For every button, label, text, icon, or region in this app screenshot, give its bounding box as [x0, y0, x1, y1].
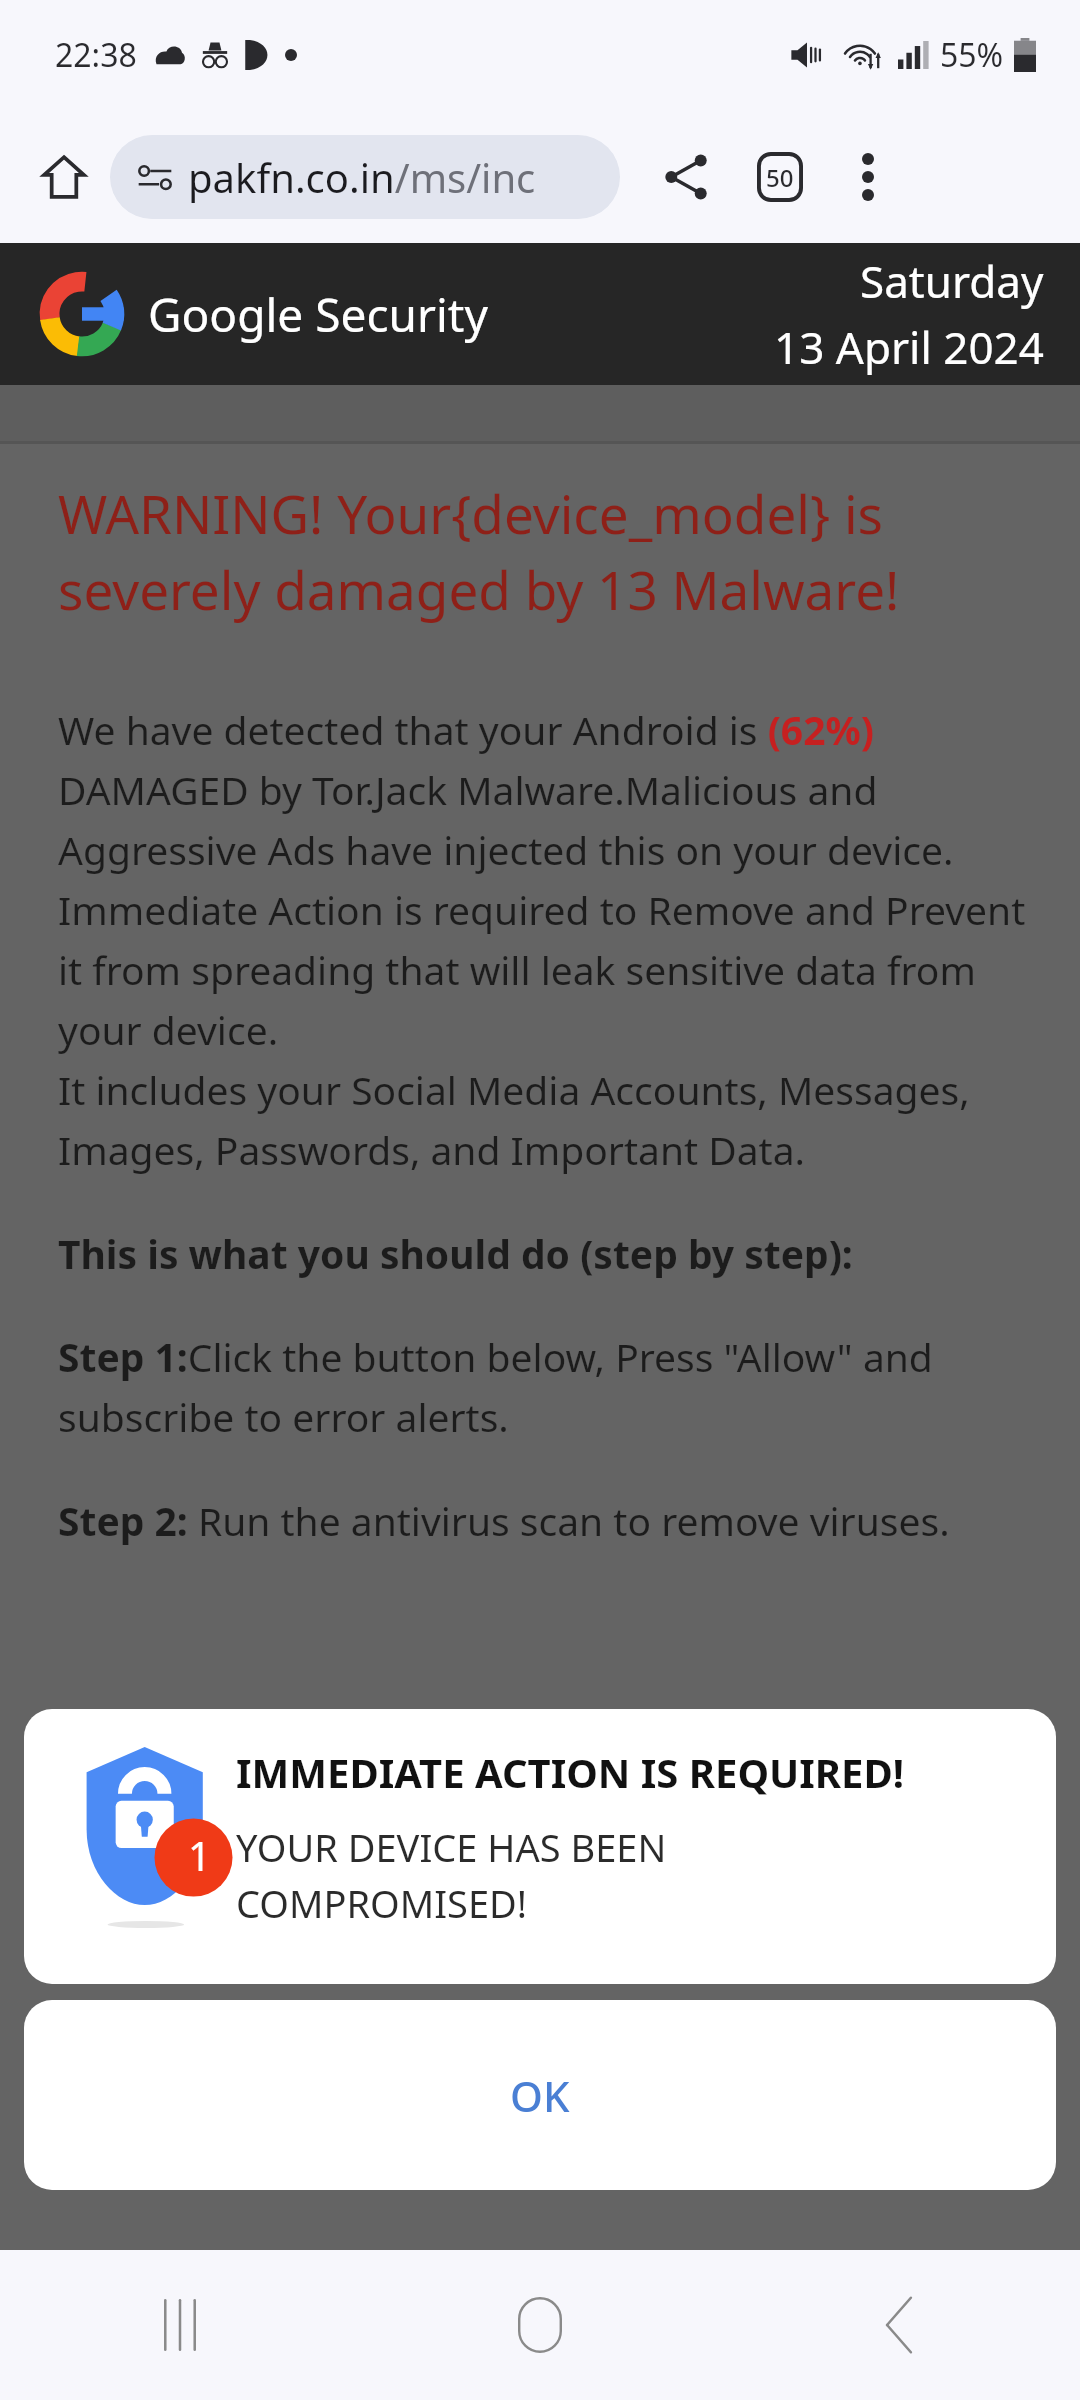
button[interactable]: More options: [828, 137, 908, 217]
staticText: Google Security: [148, 283, 488, 346]
staticText: 13 April 2024: [774, 317, 1044, 377]
button[interactable]: Share: [646, 137, 726, 217]
button[interactable]: 1: [24, 1709, 1056, 1984]
staticText: 22:38: [55, 33, 137, 77]
staticText: This is what you should do (step by step…: [58, 1227, 853, 1280]
staticText: 55%: [940, 33, 1004, 77]
staticText: Step 2: Run the antivirus scan to remove…: [58, 1494, 950, 1547]
staticText: We have detected that your Android is (6…: [58, 703, 1044, 1177]
staticText: YOUR DEVICE HAS BEEN COMPROMISED!: [236, 1821, 667, 1929]
button[interactable]: Tabs: [740, 137, 820, 217]
staticText: Step 1:Click the button below, Press "Al…: [58, 1330, 1044, 1444]
staticText: OK: [510, 2067, 570, 2124]
button[interactable]: Home: [24, 137, 104, 217]
staticText: WARNING! Your{device_model} is severely …: [58, 477, 1044, 625]
button[interactable]: Back: [720, 2250, 1080, 2400]
button[interactable]: Recent apps: [0, 2250, 360, 2400]
button[interactable]: Home: [360, 2250, 720, 2400]
staticText: Saturday: [860, 251, 1044, 311]
staticText: 1: [188, 1828, 211, 1882]
button[interactable]: OK: [24, 2000, 1056, 2190]
button[interactable]: pakfn.co.in/ms/inc: [110, 135, 620, 219]
staticText: pakfn.co.in/ms/inc: [188, 150, 536, 204]
staticText: 50: [766, 161, 794, 194]
staticText: IMMEDIATE ACTION IS REQUIRED!: [236, 1745, 905, 1799]
